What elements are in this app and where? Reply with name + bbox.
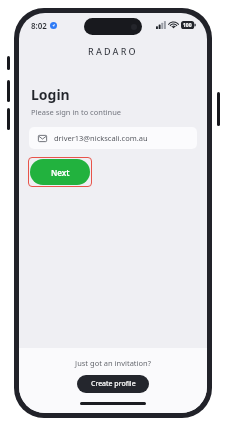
staticText: Create profile	[91, 379, 136, 389]
button[interactable]: driver13@nickscali.com.au	[29, 127, 197, 149]
button[interactable]: Create profile	[77, 375, 149, 393]
staticText: 8:02	[31, 20, 47, 31]
staticText: Login	[31, 85, 70, 104]
staticText: Please sign in to continue	[31, 107, 122, 117]
staticText: 100	[183, 22, 192, 29]
button[interactable]: Next	[30, 159, 90, 185]
staticText: driver13@nickscali.com.au	[54, 133, 148, 143]
staticText: RADARO	[88, 45, 138, 57]
staticText: Next	[51, 167, 70, 178]
staticText: Just got an invitation?	[75, 358, 151, 368]
